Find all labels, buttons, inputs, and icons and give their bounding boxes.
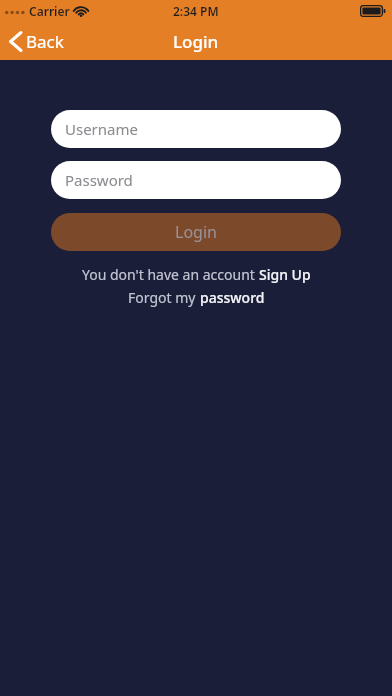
staticText: Carrier <box>29 3 70 19</box>
staticText: Username <box>65 119 138 139</box>
button[interactable]: Back <box>0 26 76 57</box>
staticText: Forgot my <box>128 288 200 307</box>
staticText: Login <box>173 30 219 53</box>
staticText: password <box>200 288 265 307</box>
button[interactable]: Username <box>51 110 341 148</box>
staticText: You don't have an account <box>82 265 259 284</box>
button[interactable]: Sign Up <box>259 265 311 284</box>
button[interactable]: Password <box>51 161 341 199</box>
button[interactable]: password <box>200 288 265 307</box>
button[interactable]: Login <box>51 213 341 251</box>
staticText: 2:34 PM <box>173 3 219 19</box>
staticText: Login <box>175 221 217 243</box>
staticText: Password <box>65 170 133 190</box>
staticText: Back <box>26 30 64 53</box>
staticText: Sign Up <box>259 265 311 284</box>
